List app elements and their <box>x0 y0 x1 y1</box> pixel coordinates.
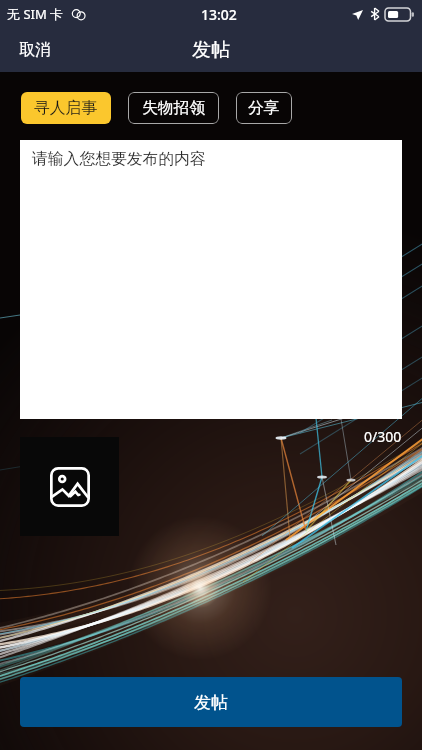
button[interactable]: 失物招领 <box>128 92 219 124</box>
staticText: 13:02 <box>201 5 237 24</box>
staticText: 发帖 <box>194 692 228 713</box>
button[interactable]: 寻人启事 <box>21 92 111 124</box>
staticText: 分享 <box>248 98 280 118</box>
staticText: 无 SIM 卡 <box>7 5 64 23</box>
staticText: 0/300 <box>364 427 402 446</box>
button[interactable]: 发帖 <box>20 677 402 727</box>
button[interactable]: 请输入您想要发布的内容 <box>20 140 402 419</box>
staticText: 取消 <box>19 40 51 60</box>
button[interactable]: 分享 <box>236 92 292 124</box>
staticText: 失物招领 <box>142 98 206 118</box>
staticText: 发帖 <box>192 38 230 62</box>
button[interactable]: Add photo <box>20 437 119 536</box>
staticText: 寻人启事 <box>34 98 98 118</box>
button[interactable]: 取消 <box>0 30 67 70</box>
staticText: 请输入您想要发布的内容 <box>32 149 206 169</box>
